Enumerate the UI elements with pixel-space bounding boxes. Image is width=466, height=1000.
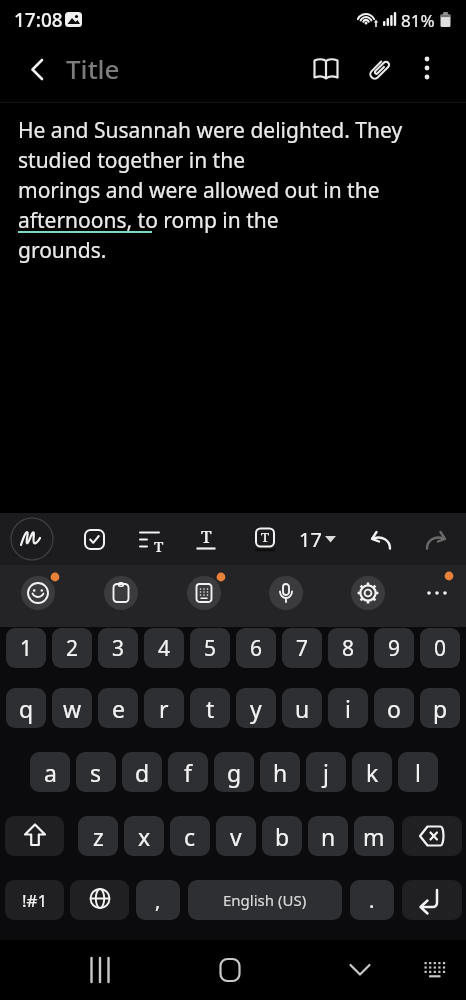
staticText: i	[345, 693, 351, 724]
staticText: 9	[388, 634, 401, 663]
staticText: g	[227, 757, 242, 788]
button[interactable]: c	[170, 816, 210, 856]
button[interactable]: 3	[98, 628, 138, 668]
button[interactable]: z	[78, 816, 118, 856]
staticText: h	[273, 757, 288, 788]
staticText: q	[19, 693, 34, 724]
staticText: u	[295, 693, 310, 724]
button[interactable]	[415, 519, 459, 559]
button[interactable]: .	[350, 880, 394, 920]
button[interactable]: f	[168, 752, 208, 792]
button[interactable]: o	[374, 688, 414, 728]
button[interactable]: 0	[420, 628, 460, 668]
button[interactable]: T	[186, 519, 226, 559]
staticText: T	[154, 536, 164, 556]
button[interactable]: 1	[6, 628, 46, 668]
button[interactable]: 5	[190, 628, 230, 668]
button[interactable]	[21, 576, 55, 610]
button[interactable]	[338, 948, 382, 992]
button[interactable]: u	[282, 688, 322, 728]
button[interactable]: 2	[52, 628, 92, 668]
staticText: 4	[158, 634, 171, 663]
button[interactable]	[407, 48, 447, 88]
staticText: T	[261, 528, 270, 546]
button[interactable]: 6	[236, 628, 276, 668]
button[interactable]	[74, 519, 114, 559]
button[interactable]: g	[214, 752, 254, 792]
button[interactable]: v	[216, 816, 256, 856]
button[interactable]	[417, 576, 457, 610]
staticText: 3	[112, 634, 125, 663]
button[interactable]: h	[260, 752, 300, 792]
button[interactable]	[10, 517, 54, 561]
staticText: n	[321, 821, 336, 852]
button[interactable]	[358, 519, 402, 559]
button[interactable]: l	[398, 752, 438, 792]
staticText: T	[201, 525, 212, 548]
button[interactable]: n	[308, 816, 348, 856]
staticText: a	[44, 757, 57, 788]
staticText: !#1	[22, 889, 48, 912]
button[interactable]: y	[236, 688, 276, 728]
button[interactable]	[188, 880, 342, 920]
staticText: English (US)	[223, 890, 307, 910]
button[interactable]	[104, 576, 138, 610]
staticText: j	[323, 757, 329, 788]
staticText: t	[206, 693, 215, 724]
button[interactable]: m	[354, 816, 394, 856]
staticText: b	[275, 821, 290, 852]
button[interactable]: a	[30, 752, 70, 792]
staticText: 17	[299, 526, 322, 553]
button[interactable]: r	[144, 688, 184, 728]
button[interactable]: 17	[295, 519, 343, 559]
button[interactable]	[18, 48, 58, 88]
staticText: 6	[250, 634, 263, 663]
staticText: d	[135, 757, 150, 788]
button[interactable]	[78, 948, 122, 992]
staticText: o	[387, 693, 401, 724]
button[interactable]: !#1	[5, 880, 64, 920]
button[interactable]: k	[352, 752, 392, 792]
button[interactable]	[70, 880, 129, 920]
button[interactable]: e	[98, 688, 138, 728]
staticText: 7	[296, 634, 309, 663]
button[interactable]: x	[124, 816, 164, 856]
button[interactable]: b	[262, 816, 302, 856]
button[interactable]: s	[76, 752, 116, 792]
button[interactable]: 7	[282, 628, 322, 668]
button[interactable]	[208, 948, 252, 992]
button[interactable]: T	[245, 519, 285, 559]
button[interactable]	[402, 816, 462, 856]
staticText: Title	[66, 51, 120, 86]
button[interactable]	[351, 576, 385, 610]
staticText: 2	[66, 634, 79, 663]
button[interactable]: j	[306, 752, 346, 792]
button[interactable]	[187, 576, 221, 610]
staticText: k	[366, 757, 379, 788]
staticText: c	[184, 821, 196, 852]
button[interactable]	[269, 576, 303, 610]
staticText: z	[93, 821, 104, 852]
button[interactable]: d	[122, 752, 162, 792]
button[interactable]: p	[420, 688, 460, 728]
button[interactable]	[413, 948, 457, 992]
button[interactable]: t	[190, 688, 230, 728]
button[interactable]: w	[52, 688, 92, 728]
staticText: s	[90, 757, 102, 788]
button[interactable]: ,	[136, 880, 180, 920]
button[interactable]: 8	[328, 628, 368, 668]
button[interactable]: T	[130, 519, 170, 559]
staticText: f	[184, 757, 192, 788]
button[interactable]	[402, 880, 462, 920]
button[interactable]: q	[6, 688, 46, 728]
button[interactable]	[357, 48, 401, 92]
staticText: ,	[155, 887, 161, 914]
staticText: 5	[204, 634, 217, 663]
button[interactable]: i	[328, 688, 368, 728]
staticText: v	[230, 821, 242, 852]
button[interactable]: 9	[374, 628, 414, 668]
staticText: e	[112, 693, 125, 724]
button[interactable]: 4	[144, 628, 184, 668]
button[interactable]	[304, 48, 348, 92]
button[interactable]	[5, 816, 64, 856]
